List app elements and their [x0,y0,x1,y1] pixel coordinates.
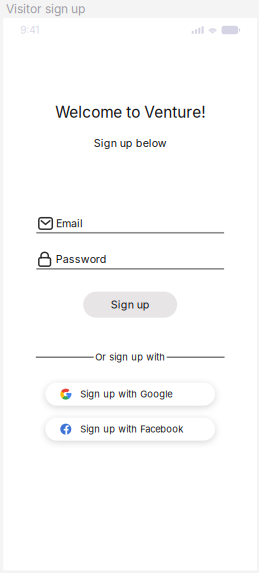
staticText: Password [56,253,107,265]
staticText: Sign up with Facebook [80,423,183,435]
button[interactable]: Email [36,216,224,234]
staticText: Welcome to Venture! [55,103,205,122]
button[interactable]: Sign up with Google [45,383,215,406]
staticText: Sign up below [94,137,167,149]
staticText: Sign up [111,298,150,311]
button[interactable]: Password [36,252,224,270]
button[interactable]: Sign up with Facebook [45,418,215,441]
staticText: Email [56,217,83,230]
staticText: Or sign up with [95,351,165,363]
staticText: 9:41 [20,24,39,36]
staticText: Visitor sign up [6,2,85,16]
button[interactable]: Sign up [83,292,177,318]
staticText: Sign up with Google [80,388,172,400]
